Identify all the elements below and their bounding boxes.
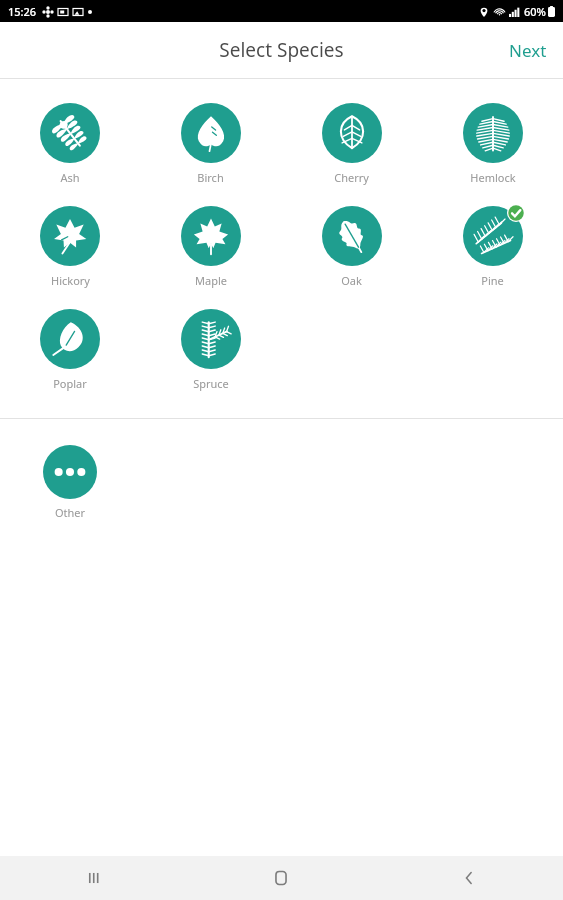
button[interactable]: Hickory	[0, 200, 140, 292]
staticText: Pine	[481, 273, 504, 288]
button[interactable]: Pine	[422, 200, 563, 292]
staticText: Birch	[197, 170, 224, 185]
staticText: Next	[509, 39, 547, 62]
button[interactable]: Birch	[140, 97, 281, 189]
staticText: Cherry	[334, 170, 369, 185]
button[interactable]: Recents	[0, 856, 187, 900]
staticText: Spruce	[193, 376, 229, 391]
button[interactable]: Poplar	[0, 303, 140, 395]
staticText: Poplar	[53, 376, 87, 391]
button[interactable]: Cherry	[281, 97, 422, 189]
staticText: Hickory	[51, 273, 90, 288]
staticText: Select Species	[219, 37, 344, 63]
staticText: Other	[55, 505, 86, 520]
staticText: Hemlock	[470, 170, 516, 185]
button[interactable]: Hemlock	[422, 97, 563, 189]
staticText: 15:26	[8, 4, 37, 19]
staticText: 60%	[524, 4, 546, 19]
button[interactable]: Other species	[0, 441, 140, 524]
staticText: Maple	[195, 273, 227, 288]
button[interactable]: Maple	[140, 200, 281, 292]
button[interactable]: Spruce	[140, 303, 281, 395]
button[interactable]: Next	[493, 27, 563, 74]
staticText: Oak	[341, 273, 362, 288]
button[interactable]: Back	[375, 856, 563, 900]
button[interactable]: Ash	[0, 97, 140, 189]
other: Other species	[43, 445, 97, 499]
button[interactable]: Oak	[281, 200, 422, 292]
staticText: Ash	[60, 170, 80, 185]
button[interactable]: Home	[187, 856, 375, 900]
